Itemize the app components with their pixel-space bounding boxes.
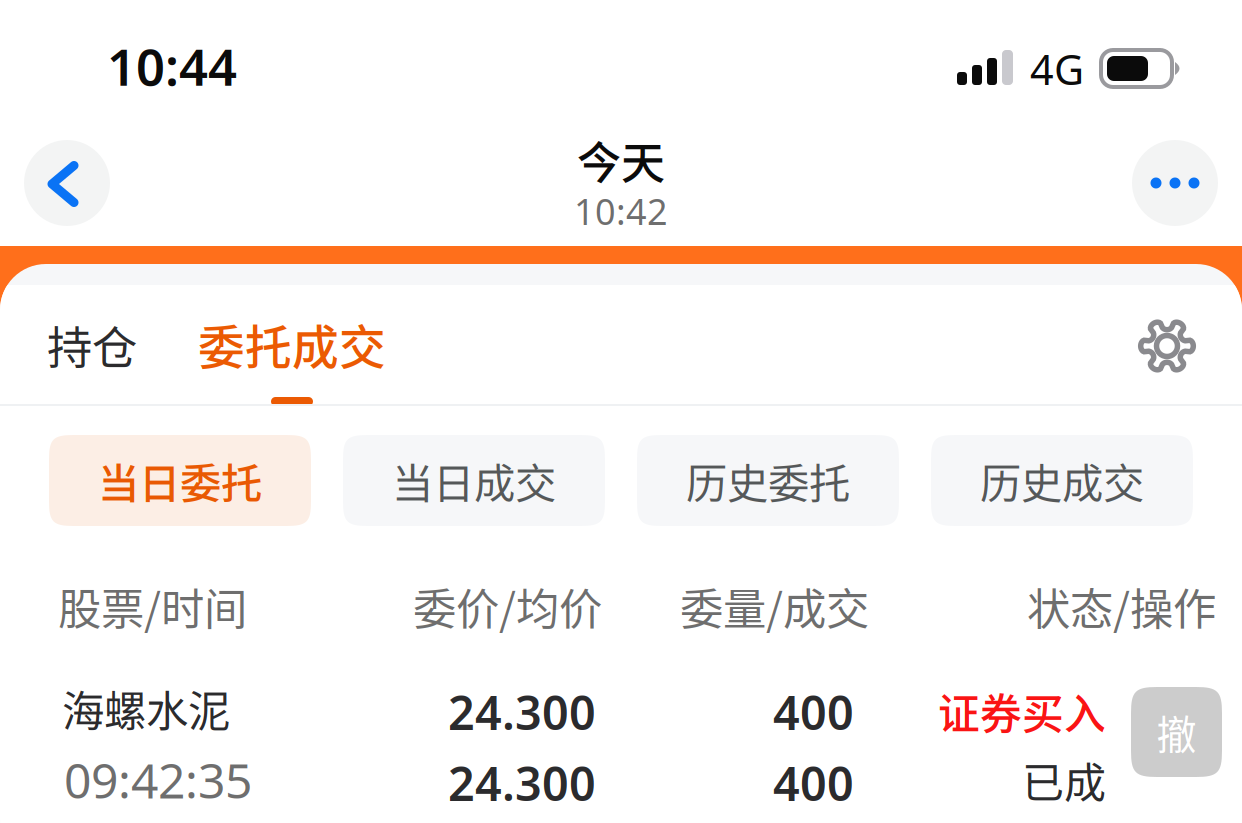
staticText: 已成: [1022, 750, 1106, 810]
staticText: 当日成交: [392, 451, 556, 510]
button[interactable]: 持仓: [22, 305, 162, 385]
button[interactable]: 当日委托: [49, 435, 311, 526]
staticText: 4G: [1030, 42, 1084, 96]
button[interactable]: 历史委托: [637, 435, 899, 526]
button[interactable]: 当日成交: [343, 435, 605, 526]
staticText: 09:42:35: [64, 748, 252, 812]
staticText: 今天: [577, 128, 665, 192]
button[interactable]: 历史成交: [931, 435, 1193, 526]
button[interactable]: More: [1132, 140, 1218, 226]
staticText: 400: [773, 752, 854, 814]
staticText: 证券买入: [938, 681, 1106, 741]
staticText: 历史成交: [980, 451, 1144, 510]
staticText: 10:44: [107, 32, 237, 100]
button[interactable]: 委托成交: [192, 304, 392, 414]
staticText: 委托成交: [198, 310, 386, 378]
staticText: 历史委托: [686, 451, 850, 510]
button[interactable]: 撤: [1131, 687, 1222, 777]
staticText: 400: [773, 681, 854, 743]
staticText: 撤: [1156, 703, 1196, 761]
staticText: 24.300: [448, 752, 596, 814]
staticText: 海螺水泥: [62, 677, 230, 739]
staticText: 状态/操作: [1027, 575, 1216, 637]
staticText: 当日委托: [98, 451, 262, 510]
staticText: 10:42: [574, 187, 668, 235]
staticText: 24.300: [448, 681, 596, 743]
staticText: 持仓: [47, 312, 137, 378]
staticText: 股票/时间: [58, 575, 247, 637]
button[interactable]: Back: [24, 140, 110, 226]
staticText: 委价/均价: [413, 575, 602, 637]
button[interactable]: Settings: [1122, 301, 1212, 391]
staticText: 委量/成交: [680, 575, 869, 637]
